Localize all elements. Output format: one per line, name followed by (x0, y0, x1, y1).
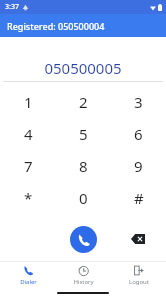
staticText: # (134, 188, 144, 208)
button[interactable]: 8 (56, 150, 111, 182)
staticText: Logout (129, 278, 149, 286)
button[interactable]: Logout (111, 262, 166, 289)
staticText: 1 (24, 92, 33, 112)
staticText: Dialer (20, 278, 37, 286)
staticText: 050500005 (0, 58, 166, 78)
button[interactable]: 1 (0, 86, 56, 118)
button[interactable]: 6 (111, 118, 166, 150)
staticText: 2 (79, 92, 88, 112)
button[interactable]: # (111, 182, 166, 214)
staticText: 0 (79, 188, 88, 208)
staticText: 8 (79, 156, 88, 176)
button[interactable]: * (0, 182, 56, 214)
button[interactable]: 3 (111, 86, 166, 118)
button[interactable]: Dialer (0, 262, 56, 289)
button[interactable]: Call (70, 226, 97, 253)
button[interactable]: Backspace (128, 229, 148, 249)
staticText: History (73, 278, 94, 286)
staticText: 7 (24, 156, 33, 176)
staticText: 9 (134, 156, 143, 176)
staticText: 3 (134, 92, 143, 112)
staticText: 6 (134, 124, 143, 144)
button[interactable]: 0 (56, 182, 111, 214)
button[interactable]: 4 (0, 118, 56, 150)
staticText: 5 (79, 124, 88, 144)
staticText: 3:37 (5, 2, 19, 12)
button[interactable]: 2 (56, 86, 111, 118)
button[interactable]: 7 (0, 150, 56, 182)
staticText: Registered: 050500004 (7, 20, 105, 32)
button[interactable]: 5 (56, 118, 111, 150)
staticText: * (24, 188, 33, 208)
staticText: 4 (24, 124, 33, 144)
button[interactable]: History (56, 262, 111, 289)
button[interactable]: 9 (111, 150, 166, 182)
